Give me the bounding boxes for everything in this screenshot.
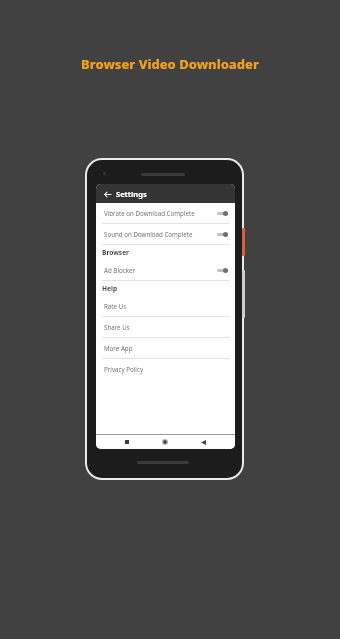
button[interactable]: Privacy Policy [96, 359, 235, 379]
button[interactable]: More App [96, 338, 235, 358]
staticText: Browser Video Downloader [81, 55, 259, 73]
staticText: Browser [102, 248, 130, 257]
staticText: Share Us [104, 323, 130, 331]
staticText: Privacy Policy [104, 365, 144, 373]
button[interactable]: Vibrate on Download Complete [96, 203, 235, 223]
button[interactable]: Home [159, 436, 171, 448]
staticText: More App [104, 344, 133, 352]
staticText: Vibrate on Download Complete [104, 209, 195, 217]
staticText: Rate Us [104, 302, 127, 310]
staticText: Sound on Download Complete [104, 230, 193, 238]
button[interactable]: Back [197, 436, 209, 448]
button[interactable]: Recents [121, 436, 133, 448]
button[interactable]: Sound on Download Complete [96, 224, 235, 244]
button[interactable]: Share Us [96, 317, 235, 337]
button[interactable]: Back [101, 188, 113, 200]
staticText: Help [102, 284, 118, 293]
button[interactable]: Rate Us [96, 296, 235, 316]
button[interactable]: Ad Blocker [96, 260, 235, 280]
staticText: Settings [116, 189, 147, 199]
staticText: Ad Blocker [104, 266, 136, 274]
